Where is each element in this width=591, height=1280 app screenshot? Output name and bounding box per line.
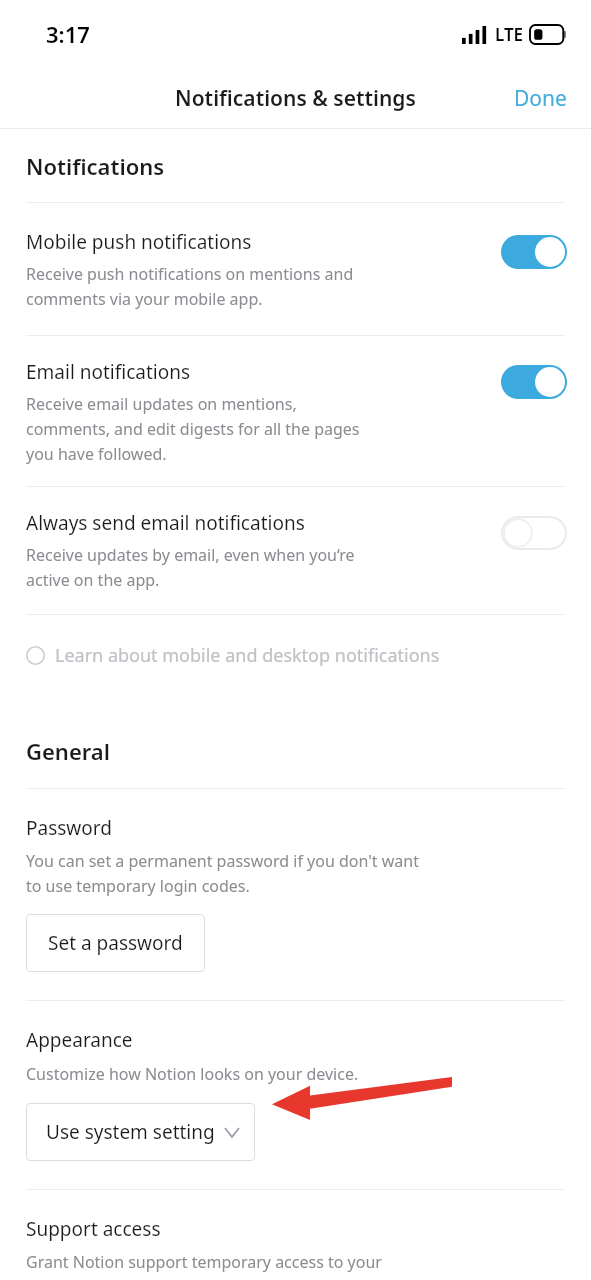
button[interactable]: Toggle off [501, 516, 567, 550]
button[interactable]: Learn about mobile and desktop notificat… [0, 615, 591, 688]
staticText: Set a password [48, 930, 183, 956]
staticText: Receive email updates on mentions, comme… [26, 393, 360, 464]
staticText: Mobile push notifications [26, 229, 252, 255]
staticText: Notifications & settings [175, 84, 416, 113]
button[interactable]: Done [490, 76, 591, 121]
staticText: Always send email notifications [26, 510, 305, 536]
staticText: Learn about mobile and desktop notificat… [55, 643, 440, 668]
button[interactable]: Toggle on [501, 235, 567, 269]
button[interactable]: Use system setting [26, 1103, 255, 1161]
button[interactable]: Email notifications [0, 336, 591, 486]
staticText: Receive updates by email, even when you‘… [26, 544, 355, 590]
staticText: Customize how Notion looks on your devic… [26, 1063, 359, 1085]
staticText: Appearance [26, 1027, 133, 1053]
staticText: 3:17 [46, 19, 90, 49]
button[interactable]: Mobile push notifications [0, 203, 591, 335]
staticText: Done [514, 84, 567, 113]
staticText: LTE [495, 23, 524, 46]
button[interactable]: Toggle on [501, 365, 567, 399]
staticText: Use system setting [46, 1119, 215, 1145]
staticText: General [26, 736, 110, 766]
button[interactable]: Always send email notifications [0, 487, 591, 614]
staticText: Notifications [26, 151, 165, 181]
staticText: Receive push notifications on mentions a… [26, 263, 354, 309]
staticText: Grant Notion support temporary access to… [26, 1251, 422, 1280]
button[interactable]: Set a password [26, 914, 205, 972]
staticText: Support access [26, 1216, 161, 1242]
staticText: You can set a permanent password if you … [26, 850, 419, 896]
staticText: Password [26, 815, 112, 841]
staticText: Email notifications [26, 359, 191, 385]
